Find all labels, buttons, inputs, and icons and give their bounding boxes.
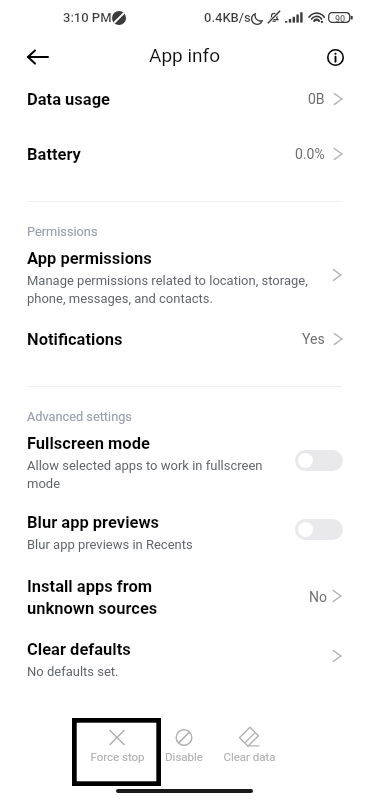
- button[interactable]: Toggle off: [295, 450, 343, 471]
- staticText: Fullscreen mode: [27, 434, 150, 453]
- staticText: App info: [149, 44, 220, 66]
- staticText: Install apps from unknown sources: [27, 577, 158, 618]
- button[interactable]: Disable: [140, 723, 228, 773]
- staticText: Notifications: [27, 330, 123, 349]
- staticText: Clear defaults: [27, 640, 131, 659]
- button[interactable]: Data usage: [0, 85, 369, 127]
- staticText: Force stop: [90, 750, 145, 763]
- staticText: App permissions: [27, 249, 152, 268]
- staticText: Data usage: [27, 90, 111, 109]
- staticText: 3:10 PM: [63, 10, 112, 25]
- button[interactable]: Clear defaults: [0, 637, 369, 683]
- button[interactable]: Clear data: [205, 723, 293, 773]
- staticText: Disable: [165, 750, 203, 763]
- staticText: Blur app previews in Recents: [27, 537, 193, 552]
- staticText: 0B: [308, 91, 325, 107]
- button[interactable]: Notifications: [0, 325, 369, 367]
- staticText: Blur app previews: [27, 513, 160, 532]
- button[interactable]: App permissions: [0, 246, 369, 304]
- staticText: Yes: [302, 331, 325, 347]
- staticText: 90: [335, 14, 346, 25]
- button[interactable]: App details: [317, 39, 353, 75]
- button[interactable]: Fullscreen mode: [0, 431, 369, 493]
- button[interactable]: Install apps from unknown sources: [0, 574, 369, 628]
- button[interactable]: Battery: [0, 140, 369, 182]
- staticText: 0.4KB/s: [204, 10, 251, 25]
- staticText: 0.0%: [295, 146, 325, 162]
- staticText: Advanced settings: [27, 409, 132, 424]
- button[interactable]: Back: [19, 39, 55, 75]
- staticText: Clear data: [223, 750, 276, 763]
- button[interactable]: Blur app previews: [0, 510, 369, 558]
- button[interactable]: Force stop: [73, 723, 161, 773]
- staticText: Manage permissions related to location, …: [27, 273, 308, 306]
- button[interactable]: Toggle off: [295, 519, 343, 540]
- staticText: Battery: [27, 145, 81, 164]
- staticText: No: [309, 589, 327, 605]
- staticText: No defaults set.: [27, 664, 119, 679]
- staticText: Permissions: [27, 224, 98, 239]
- staticText: Allow selected apps to work in fullscree…: [27, 458, 263, 491]
